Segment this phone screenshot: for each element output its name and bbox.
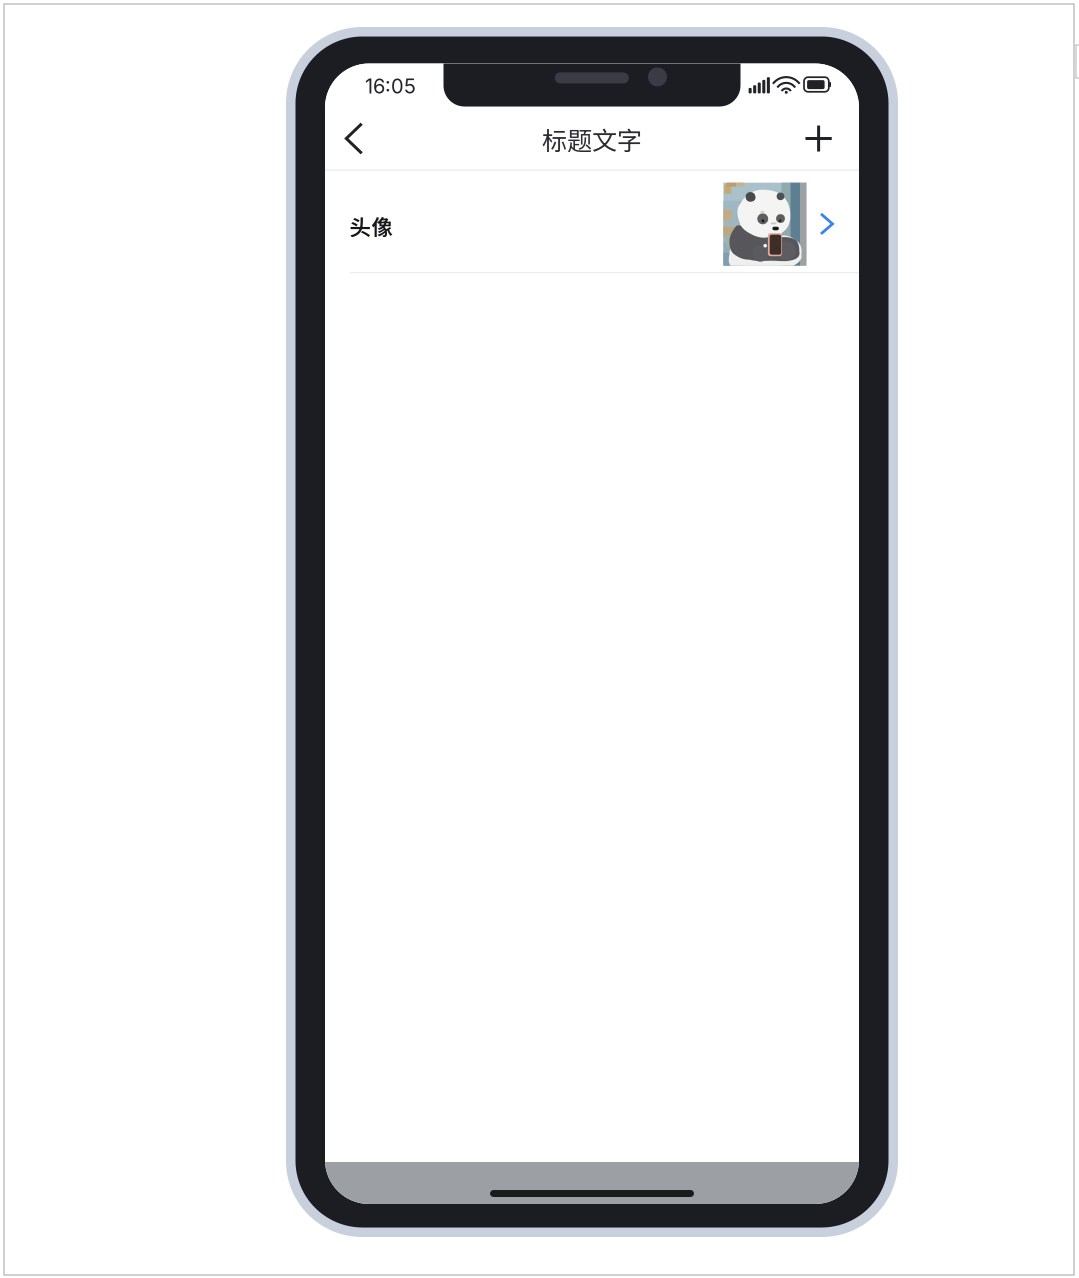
staticText: 头像 bbox=[349, 210, 393, 241]
staticText: 标题文字 bbox=[542, 121, 642, 157]
button[interactable]: Add bbox=[793, 111, 845, 166]
button[interactable]: Back bbox=[331, 111, 377, 166]
button[interactable]: 头像 bbox=[325, 171, 859, 274]
staticText: 16:05 bbox=[365, 74, 416, 98]
